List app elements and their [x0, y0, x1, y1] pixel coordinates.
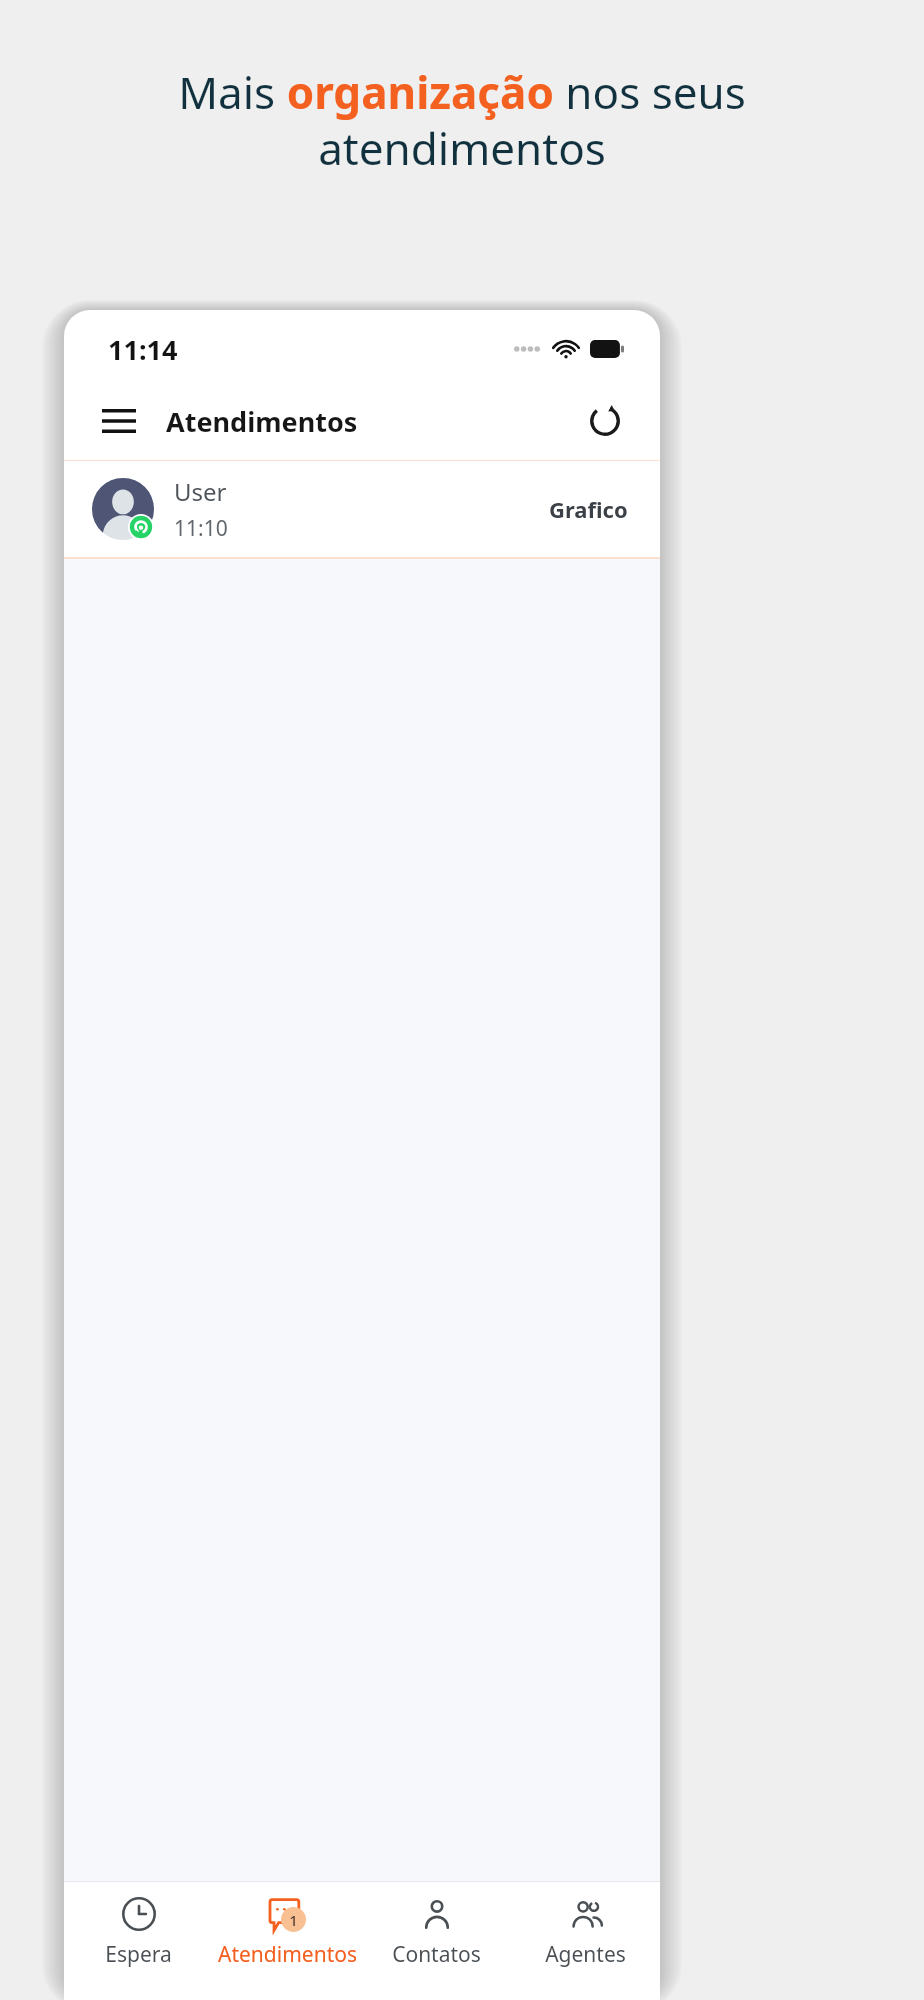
staticText: Espera: [105, 1940, 172, 1969]
staticText: Grafico: [549, 494, 628, 524]
staticText: 1: [289, 1910, 298, 1930]
button[interactable]: User: [64, 461, 660, 557]
staticText: Atendimentos: [218, 1940, 357, 1969]
staticText: Mais organização nos seus atendimentos: [40, 62, 884, 178]
button[interactable]: Espera: [64, 1882, 213, 2000]
button[interactable]: Contatos: [362, 1882, 511, 2000]
button[interactable]: Agentes: [511, 1882, 660, 2000]
staticText: 11:14: [108, 331, 178, 368]
button[interactable]: Open navigation menu: [96, 401, 142, 441]
staticText: Agentes: [545, 1940, 626, 1969]
staticText: 11:10: [174, 514, 228, 543]
button[interactable]: 1: [213, 1882, 362, 2000]
staticText: Atendimentos: [166, 403, 358, 440]
button[interactable]: Refresh: [578, 394, 632, 448]
staticText: Contatos: [392, 1940, 481, 1969]
staticText: User: [174, 475, 227, 508]
